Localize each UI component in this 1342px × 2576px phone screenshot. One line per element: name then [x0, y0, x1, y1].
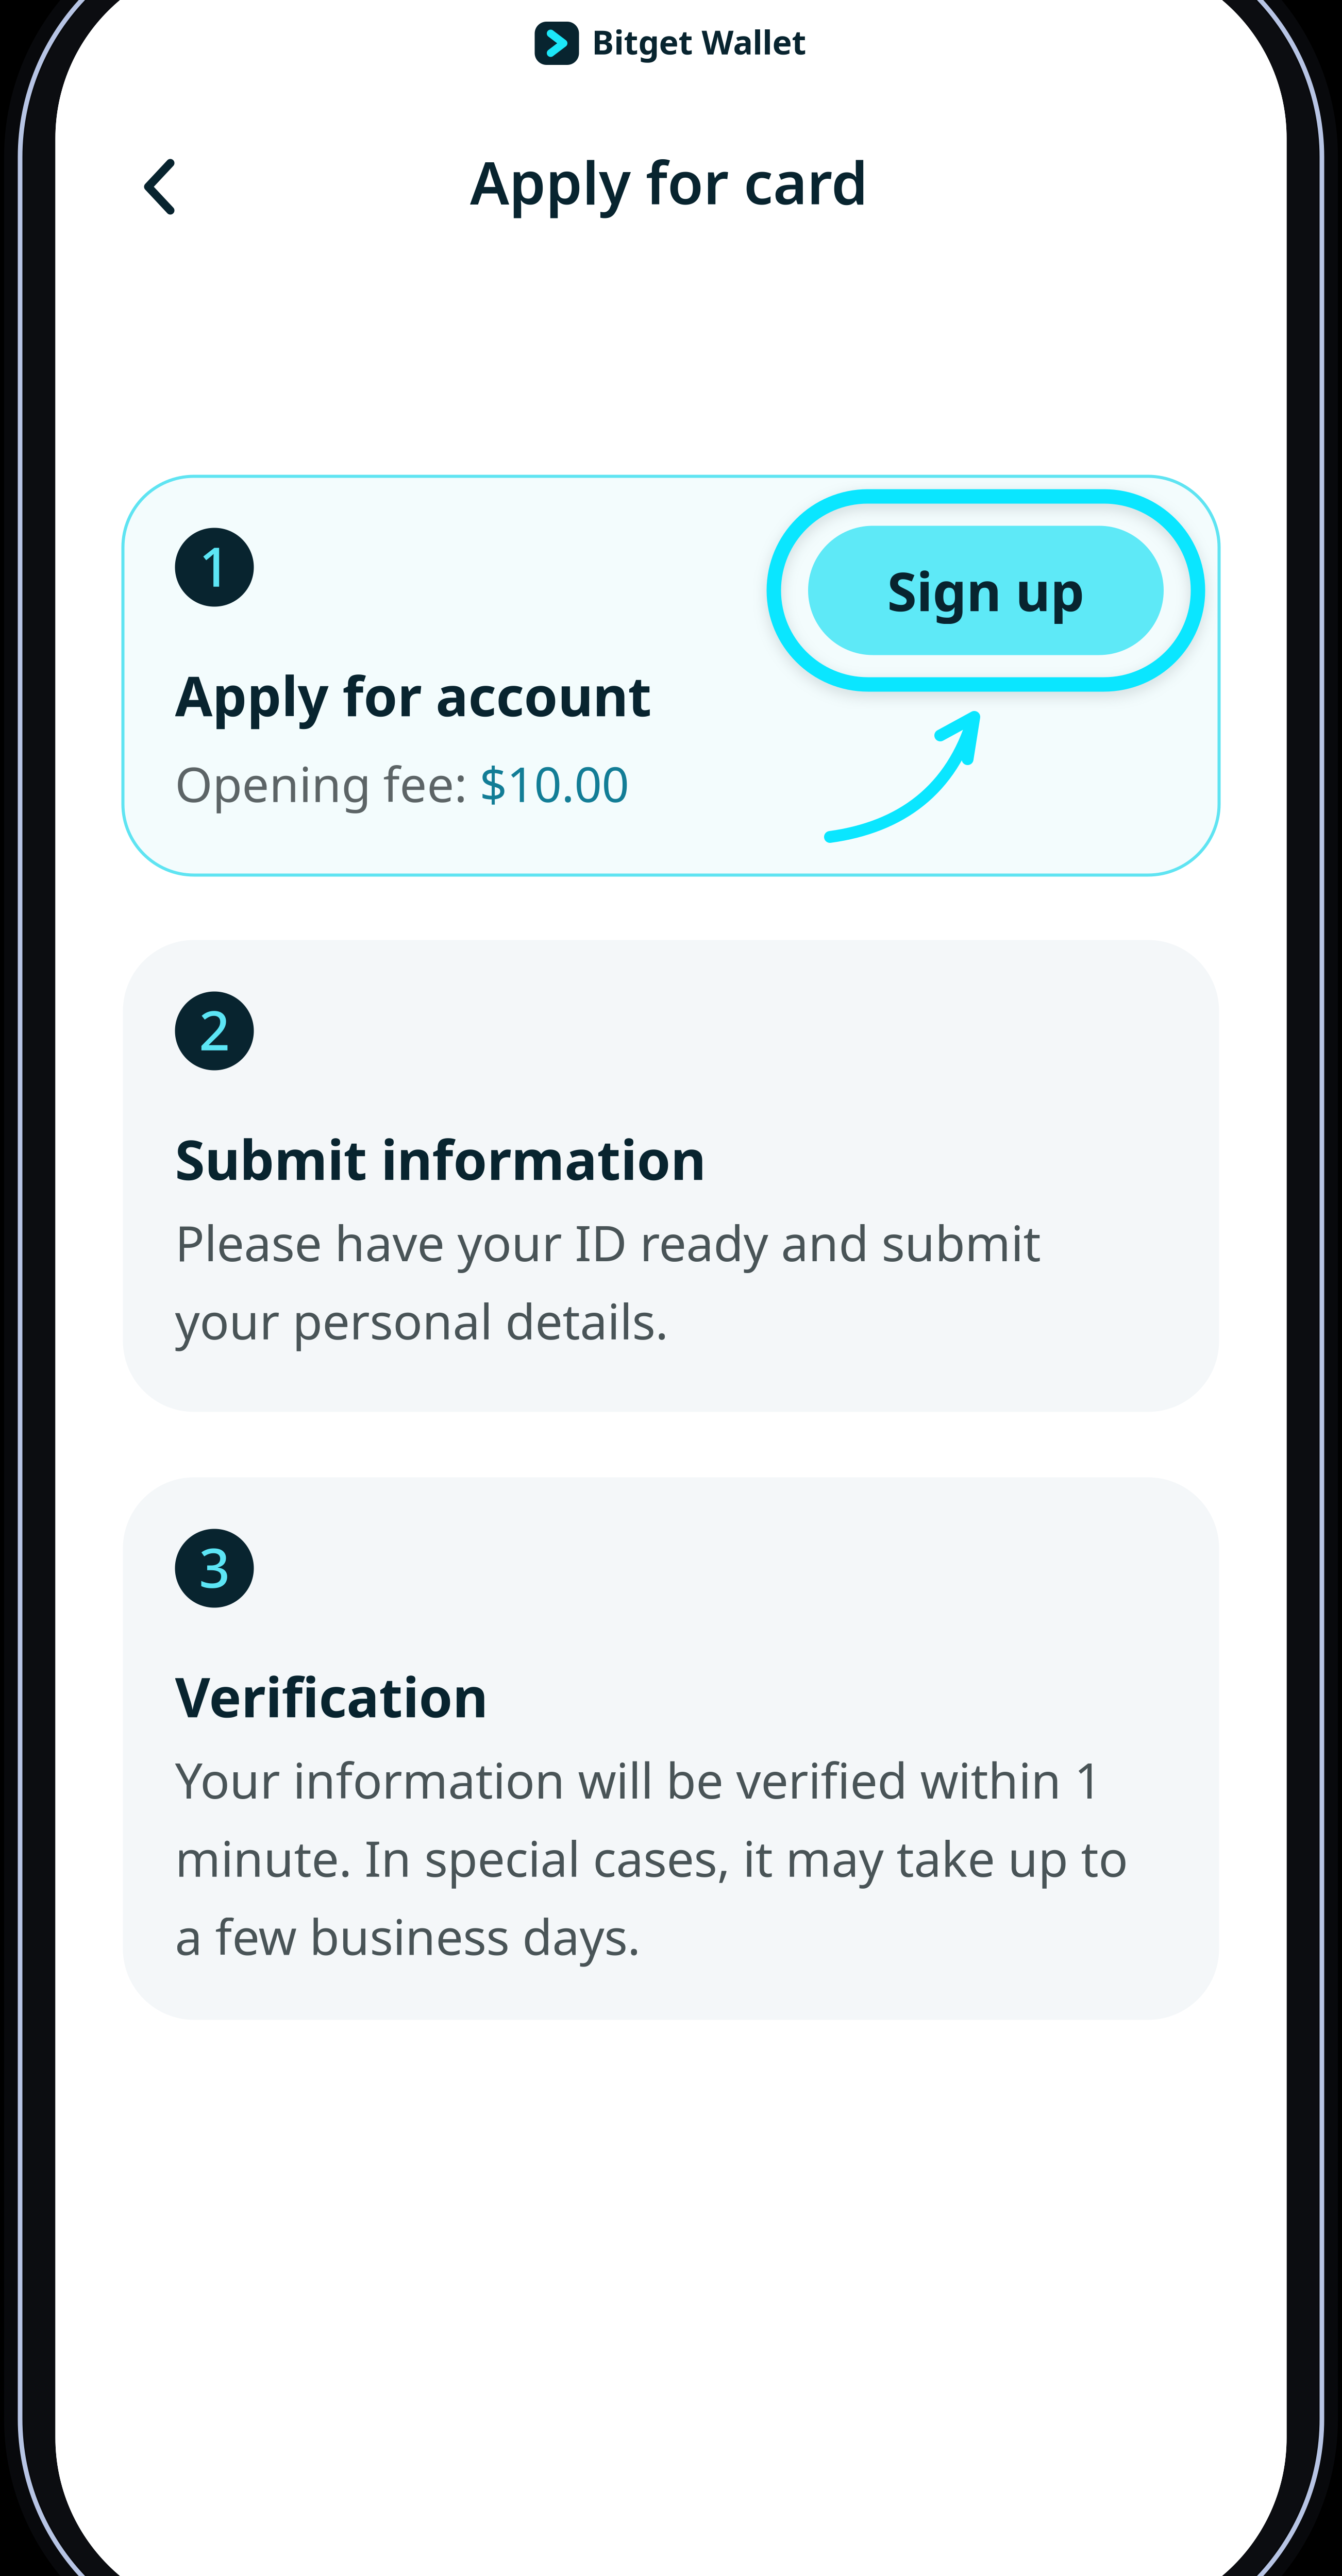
staticText: 3 — [199, 1531, 230, 1603]
staticText: 2 — [199, 993, 230, 1065]
button[interactable]: Sign up — [767, 489, 1205, 692]
staticText: 1 — [199, 530, 230, 602]
staticText: Apply for card — [470, 143, 868, 220]
staticText: $10.00 — [480, 751, 629, 815]
staticText: Verification — [175, 1660, 488, 1732]
staticText: Your information will be verified within… — [175, 1747, 1128, 1968]
staticText: Opening fee: — [175, 751, 480, 815]
staticText: Bitget Wallet — [592, 20, 806, 64]
staticText: Please have your ID ready and submit you… — [175, 1210, 1041, 1353]
staticText: Apply for account — [175, 659, 652, 731]
button[interactable]: Back — [116, 131, 202, 242]
staticText: Sign up — [887, 555, 1085, 626]
staticText: Submit information — [175, 1123, 706, 1195]
